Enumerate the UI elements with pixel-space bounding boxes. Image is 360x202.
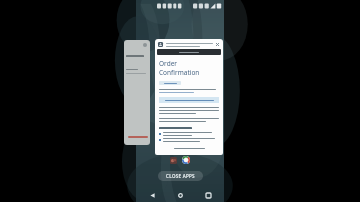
button[interactable]: App [170,157,177,164]
button[interactable]: Close [215,42,220,47]
button[interactable]: App [182,156,190,164]
button[interactable] [159,81,181,85]
button[interactable]: Recent apps [201,188,215,202]
staticText: CLOSE APPS [166,173,195,179]
button[interactable]: Home [173,188,187,202]
button[interactable]: Close [155,39,223,155]
button[interactable]: Footer link [174,147,205,150]
button[interactable]: CLOSE APPS [158,171,203,181]
button[interactable] [159,97,219,103]
button[interactable] [124,40,150,145]
staticText: Order Confirmation [159,59,219,77]
button[interactable]: Back [145,188,159,202]
button[interactable] [157,49,221,55]
